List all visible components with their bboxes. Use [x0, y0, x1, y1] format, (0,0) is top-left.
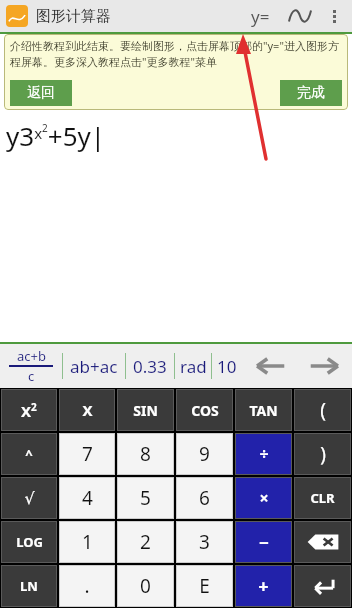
- button[interactable]: 9: [176, 433, 233, 475]
- staticText: (: [320, 397, 326, 423]
- button[interactable]: .: [59, 565, 115, 607]
- staticText: 10: [217, 355, 237, 378]
- staticText: 7: [82, 441, 93, 467]
- staticText: 0: [140, 573, 151, 599]
- button[interactable]: SIN: [117, 389, 174, 431]
- button[interactable]: CLR: [294, 477, 351, 519]
- button[interactable]: 0.33: [126, 344, 174, 388]
- button[interactable]: ac+b: [0, 344, 62, 388]
- button[interactable]: Previous: [242, 344, 297, 388]
- staticText: 6: [199, 485, 210, 511]
- staticText: y=: [251, 5, 270, 28]
- staticText: ac+b: [17, 347, 46, 365]
- button[interactable]: Delete: [294, 521, 351, 563]
- staticText: X2: [21, 400, 37, 421]
- staticText: 4: [82, 485, 93, 511]
- button[interactable]: Next: [297, 344, 352, 388]
- button[interactable]: LOG: [1, 521, 57, 563]
- staticText: rad: [180, 355, 207, 378]
- button[interactable]: 返回: [10, 80, 72, 106]
- button[interactable]: More options: [320, 0, 348, 32]
- button[interactable]: ×: [235, 477, 292, 519]
- button[interactable]: E: [176, 565, 233, 607]
- staticText: ÷: [259, 443, 269, 465]
- staticText: LOG: [16, 533, 43, 551]
- staticText: LN: [20, 577, 38, 595]
- button[interactable]: Graph: [280, 0, 320, 32]
- staticText: 完成: [297, 84, 325, 102]
- button[interactable]: LN: [1, 565, 57, 607]
- button[interactable]: X: [59, 389, 115, 431]
- staticText: √: [24, 489, 35, 508]
- button[interactable]: 2: [117, 521, 174, 563]
- button[interactable]: 8: [117, 433, 174, 475]
- button[interactable]: 0: [117, 565, 174, 607]
- button[interactable]: −: [235, 521, 292, 563]
- staticText: 8: [140, 441, 151, 467]
- staticText: 介绍性教程到此结束。要绘制图形，点击屏幕顶部的"y="进入图形方程屏幕。更多深入…: [10, 38, 342, 69]
- button[interactable]: ): [294, 433, 351, 475]
- staticText: 0.33: [133, 355, 167, 378]
- staticText: SIN: [133, 401, 158, 420]
- staticText: +: [258, 574, 269, 599]
- button[interactable]: 10: [212, 344, 242, 388]
- staticText: 2: [140, 529, 151, 555]
- staticText: −: [259, 531, 269, 554]
- button[interactable]: ^: [1, 433, 57, 475]
- button[interactable]: 完成: [280, 80, 342, 106]
- staticText: 3: [199, 529, 210, 555]
- button[interactable]: TAN: [235, 389, 292, 431]
- button[interactable]: 4: [59, 477, 115, 519]
- button[interactable]: (: [294, 389, 351, 431]
- button[interactable]: √: [1, 477, 57, 519]
- staticText: .: [84, 573, 90, 599]
- staticText: CLR: [310, 489, 335, 507]
- button[interactable]: 7: [59, 433, 115, 475]
- button[interactable]: 1: [59, 521, 115, 563]
- staticText: 1: [82, 529, 93, 555]
- staticText: 图形计算器: [36, 7, 111, 26]
- button[interactable]: ab+ac: [63, 344, 125, 388]
- button[interactable]: Enter: [294, 565, 351, 607]
- button[interactable]: 3: [176, 521, 233, 563]
- staticText: COS: [191, 401, 219, 420]
- staticText: TAN: [249, 401, 278, 420]
- staticText: 返回: [27, 84, 55, 102]
- staticText: ): [320, 441, 326, 467]
- staticText: 5: [140, 485, 151, 511]
- staticText: ab+ac: [70, 355, 118, 378]
- staticText: c: [28, 367, 35, 385]
- staticText: ^: [25, 445, 33, 463]
- staticText: ×: [259, 487, 269, 509]
- staticText: 9: [199, 441, 210, 467]
- button[interactable]: x squared: [1, 389, 57, 431]
- button[interactable]: rad: [175, 344, 211, 388]
- button[interactable]: +: [235, 565, 292, 607]
- button[interactable]: COS: [176, 389, 233, 431]
- staticText: E: [199, 573, 210, 599]
- button[interactable]: 6: [176, 477, 233, 519]
- button[interactable]: ÷: [235, 433, 292, 475]
- staticText: y3x2+5y|: [6, 118, 106, 153]
- button[interactable]: 5: [117, 477, 174, 519]
- staticText: X: [82, 400, 93, 420]
- button[interactable]: Equation editor: [240, 0, 280, 32]
